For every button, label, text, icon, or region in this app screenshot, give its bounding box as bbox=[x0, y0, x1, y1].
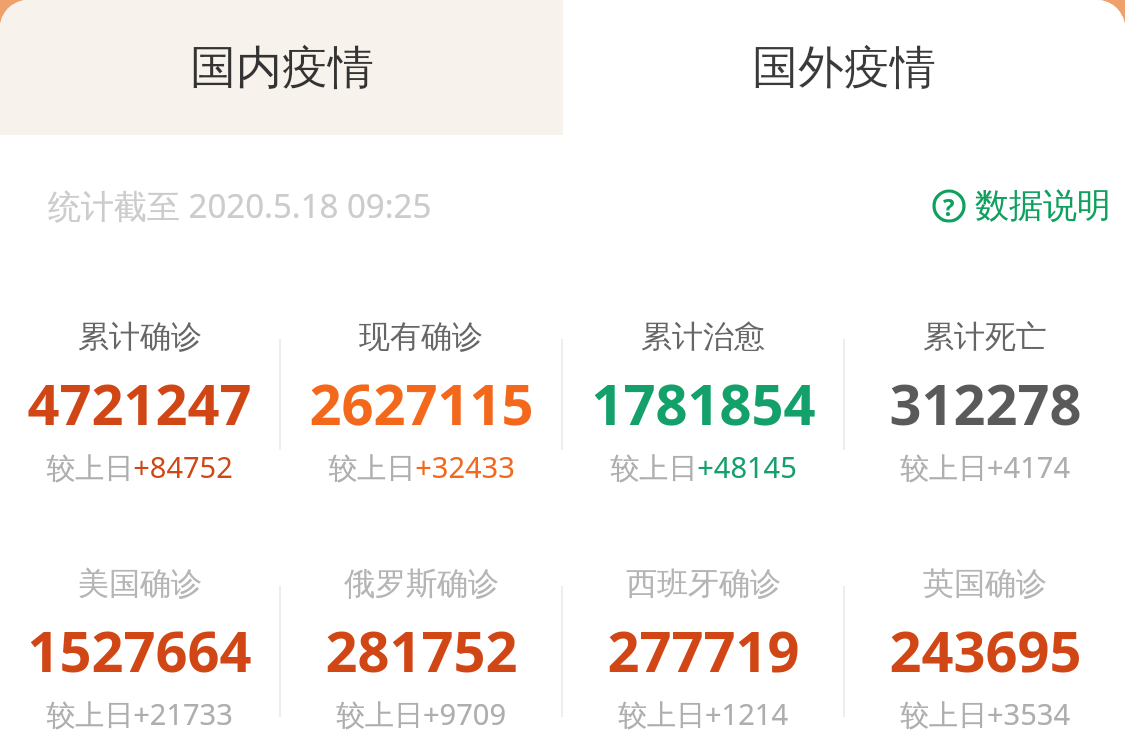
button[interactable]: 国外疫情 bbox=[563, 0, 1125, 135]
other: 数据说明 bbox=[932, 189, 966, 223]
staticText: ? bbox=[943, 190, 955, 223]
staticText: 较上日+4174 bbox=[900, 447, 1070, 487]
staticText: 统计截至 2020.5.18 09:25 bbox=[48, 183, 432, 228]
staticText: 4721247 bbox=[27, 365, 252, 441]
button[interactable]: 美国确诊 bbox=[0, 564, 279, 734]
staticText: 281752 bbox=[325, 612, 518, 688]
staticText: 较上日+84752 bbox=[46, 447, 233, 487]
staticText: 美国确诊 bbox=[78, 564, 202, 603]
staticText: 国外疫情 bbox=[752, 39, 936, 97]
button[interactable]: 累计死亡 bbox=[845, 317, 1125, 487]
staticText: 英国确诊 bbox=[923, 564, 1047, 603]
staticText: 243695 bbox=[889, 612, 1082, 688]
button[interactable]: 累计治愈 bbox=[563, 317, 843, 487]
staticText: 较上日+1214 bbox=[618, 694, 788, 734]
staticText: 较上日+9709 bbox=[336, 694, 506, 734]
staticText: 现有确诊 bbox=[359, 317, 483, 356]
staticText: 1527664 bbox=[27, 612, 252, 688]
staticText: 累计确诊 bbox=[78, 317, 202, 356]
button[interactable]: 现有确诊 bbox=[281, 317, 561, 487]
button[interactable]: 国内疫情 bbox=[0, 0, 563, 135]
button[interactable]: 西班牙确诊 bbox=[563, 564, 843, 734]
staticText: 277719 bbox=[607, 612, 800, 688]
staticText: 2627115 bbox=[309, 365, 534, 441]
staticText: 累计治愈 bbox=[641, 317, 765, 356]
staticText: 累计死亡 bbox=[923, 317, 1047, 356]
staticText: 较上日+48145 bbox=[610, 447, 797, 487]
button[interactable]: 累计确诊 bbox=[0, 317, 279, 487]
button[interactable]: 俄罗斯确诊 bbox=[281, 564, 561, 734]
staticText: 312278 bbox=[889, 365, 1082, 441]
button[interactable]: 数据说明 bbox=[918, 176, 1125, 235]
button[interactable]: 英国确诊 bbox=[845, 564, 1125, 734]
staticText: 较上日+3534 bbox=[900, 694, 1070, 734]
staticText: 数据说明 bbox=[975, 184, 1111, 227]
staticText: 国内疫情 bbox=[190, 39, 374, 97]
staticText: 俄罗斯确诊 bbox=[344, 564, 499, 603]
staticText: 1781854 bbox=[591, 365, 816, 441]
staticText: 较上日+32433 bbox=[328, 447, 515, 487]
staticText: 西班牙确诊 bbox=[626, 564, 781, 603]
staticText: 较上日+21733 bbox=[46, 694, 233, 734]
